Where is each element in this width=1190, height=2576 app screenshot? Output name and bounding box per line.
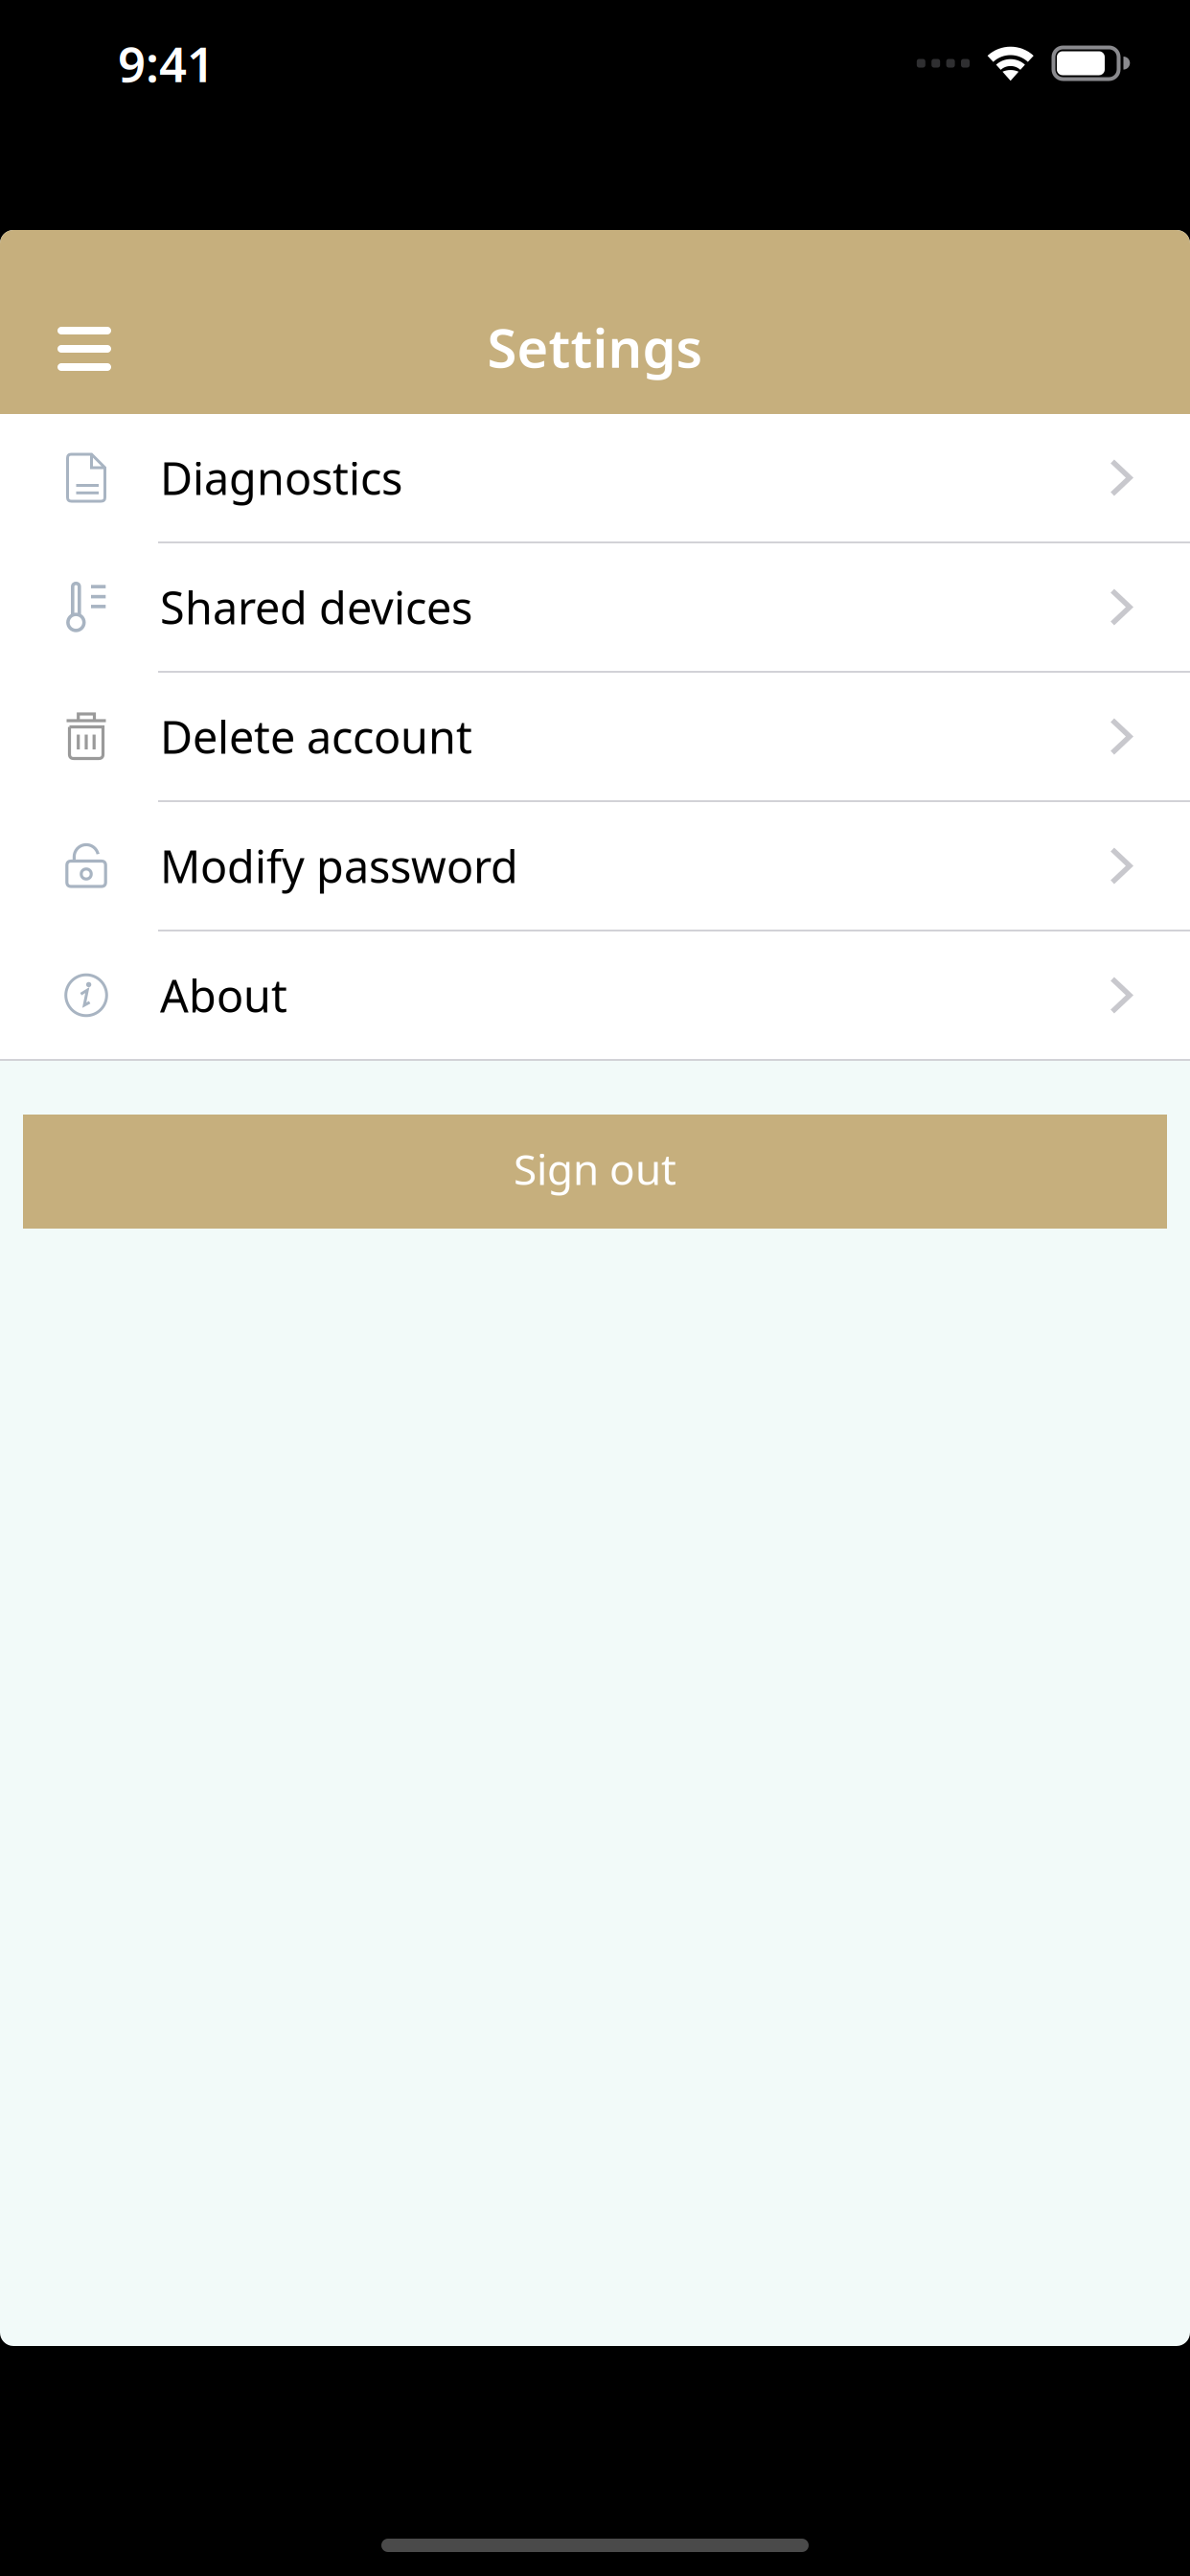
button[interactable]: Sign out bbox=[23, 1115, 1167, 1229]
staticText: 9:41 bbox=[118, 31, 215, 96]
button[interactable]: Menu bbox=[0, 287, 140, 414]
button[interactable]: Shared devices bbox=[0, 543, 1190, 671]
button[interactable]: Modify password bbox=[0, 802, 1190, 930]
staticText: Sign out bbox=[514, 1141, 676, 1197]
staticText: Modify password bbox=[160, 836, 518, 896]
button[interactable]: About bbox=[0, 931, 1190, 1059]
staticText: Settings bbox=[487, 311, 703, 383]
staticText: Diagnostics bbox=[160, 448, 402, 507]
button[interactable]: Delete account bbox=[0, 673, 1190, 800]
button[interactable]: Diagnostics bbox=[0, 414, 1190, 541]
staticText: About bbox=[160, 966, 287, 1025]
staticText: Delete account bbox=[160, 707, 472, 766]
staticText: Shared devices bbox=[160, 577, 472, 637]
